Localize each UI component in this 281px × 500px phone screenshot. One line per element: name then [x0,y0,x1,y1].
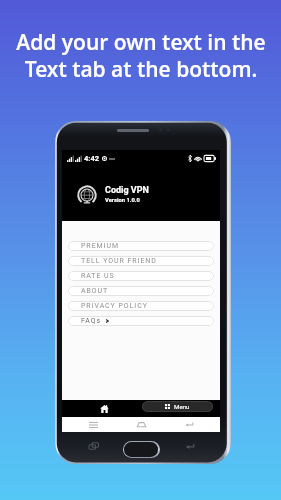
staticText: Version 1.0.0 [105,197,140,204]
staticText: PREMIUM [81,242,120,250]
button[interactable]: Home [128,417,154,432]
staticText: 4:42 [84,154,100,163]
button[interactable]: Menu [142,401,213,412]
staticText: TELL YOUR FRIEND [81,257,157,265]
button[interactable]: FAQs [68,316,214,326]
other: Back [185,442,195,450]
button[interactable]: Back [176,417,202,432]
staticText: Menu [174,403,190,410]
button[interactable]: ABOUT [68,286,214,296]
button[interactable]: Menu [80,417,106,432]
button[interactable]: PRIVACY POLICY [68,301,214,311]
other: Recents [89,442,99,450]
staticText: RATE US [81,272,115,280]
button[interactable]: PREMIUM [68,241,214,251]
staticText: Add your own text in the Text tab at the… [16,28,266,84]
staticText: FAQs [81,317,102,325]
button[interactable]: Home [90,400,118,417]
staticText: PRIVACY POLICY [81,302,148,310]
staticText: ABOUT [81,287,109,295]
button[interactable]: TELL YOUR FRIEND [68,256,214,266]
button[interactable]: RATE US [68,271,214,281]
staticText: Codig VPN [105,185,149,196]
